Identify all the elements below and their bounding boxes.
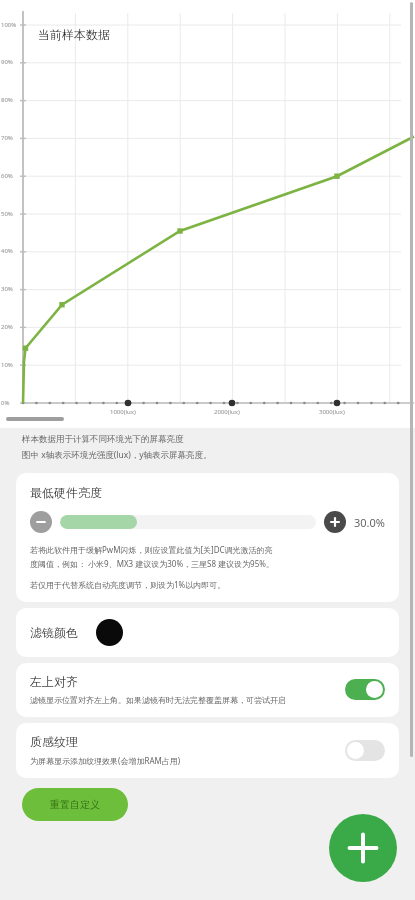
- button[interactable]: Add sample: [329, 814, 397, 882]
- button[interactable]: 质感纹理: [16, 723, 399, 778]
- button[interactable]: 左上对齐: [16, 663, 399, 717]
- staticText: 为屏幕显示添加纹理效果(会增加RAM占用): [30, 755, 181, 766]
- staticText: 0%: [1, 399, 10, 407]
- staticText: 滤镜颜色: [30, 625, 78, 640]
- staticText: 100%: [1, 21, 17, 29]
- button[interactable]: Decrease brightness: [30, 511, 52, 533]
- staticText: 30.0%: [354, 515, 385, 530]
- staticText: 80%: [1, 96, 13, 104]
- staticText: 滤镜显示位置对齐左上角。如果滤镜有时无法完整覆盖屏幕，可尝试开启: [30, 695, 286, 705]
- staticText: 70%: [1, 134, 13, 142]
- staticText: 若仅用于代替系统自动亮度调节，则设为1%以内即可。: [30, 579, 226, 590]
- staticText: 质感纹理: [30, 734, 78, 749]
- button[interactable]: Increase brightness: [324, 511, 346, 533]
- staticText: 90%: [1, 58, 13, 66]
- button[interactable]: 重置自定义: [22, 788, 128, 821]
- staticText: 度阈值，例如： 小米9、MX3 建议设为30%，三星S8 建议设为95%。: [30, 558, 274, 569]
- staticText: 20%: [1, 323, 13, 331]
- button[interactable]: Switch on: [345, 679, 385, 700]
- staticText: 30%: [1, 285, 13, 293]
- staticText: 重置自定义: [50, 798, 100, 811]
- button[interactable]: Switch off: [345, 740, 385, 761]
- button[interactable]: [60, 515, 316, 529]
- staticText: 左上对齐: [30, 674, 78, 689]
- staticText: 图中 x轴表示环境光强度(lux)，y轴表示屏幕亮度。: [22, 449, 212, 461]
- staticText: 2000(lux): [214, 408, 240, 416]
- staticText: 40%: [1, 247, 13, 255]
- staticText: 若将此软件用于缓解PwM闪烁，则应设置此值为[关]DC调光激活的亮: [30, 544, 273, 555]
- staticText: 1000(lux): [110, 408, 136, 416]
- staticText: 3000(lux): [319, 408, 345, 416]
- staticText: 样本数据用于计算不同环境光下的屏幕亮度: [22, 434, 184, 445]
- staticText: 10%: [1, 361, 13, 369]
- staticText: 最低硬件亮度: [30, 485, 102, 500]
- staticText: 50%: [1, 210, 13, 218]
- staticText: 60%: [1, 172, 13, 180]
- button[interactable]: Pick filter color: [96, 619, 123, 646]
- staticText: 当前样本数据: [38, 27, 110, 42]
- button[interactable]: 滤镜颜色: [16, 608, 399, 657]
- button[interactable]: 最低硬件亮度: [16, 473, 399, 602]
